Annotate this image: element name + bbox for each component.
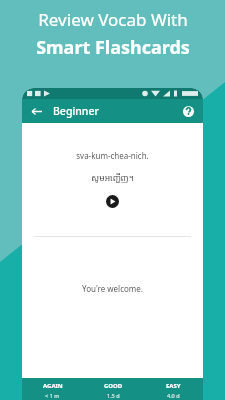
staticText: Smart Flashcards (36, 35, 190, 60)
staticText: < 1 m (45, 392, 60, 399)
staticText: Review Vocab With (38, 8, 188, 31)
staticText: 1.5 d (107, 392, 120, 399)
staticText: You're welcome. (82, 283, 143, 294)
button[interactable]: Back (27, 102, 45, 120)
staticText: AGAIN (43, 382, 63, 390)
button[interactable]: EASY (143, 378, 203, 400)
button[interactable]: AGAIN (22, 378, 83, 400)
staticText: EASY (166, 382, 181, 390)
staticText: 4.0 d (167, 392, 180, 399)
staticText: សូមអញ្ជើញ។ (91, 172, 134, 184)
staticText: GOOD (104, 382, 123, 390)
button[interactable]: Help (179, 102, 197, 120)
button[interactable]: GOOD (83, 378, 143, 400)
staticText: sva-kum-chea-nich. (76, 150, 149, 161)
staticText: Beginner (53, 104, 99, 118)
button[interactable]: Play audio (106, 195, 119, 208)
